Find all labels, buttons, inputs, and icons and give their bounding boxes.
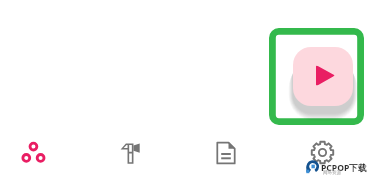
button[interactable]: Apps: [0, 124, 76, 182]
button[interactable]: Documents: [183, 124, 269, 182]
staticText: PCPOP下载: [321, 162, 367, 174]
staticText: 网络资源: [323, 170, 341, 176]
button[interactable]: Tools: [87, 124, 173, 182]
button[interactable]: Play: [293, 47, 353, 106]
button[interactable]: Settings: [279, 123, 365, 181]
